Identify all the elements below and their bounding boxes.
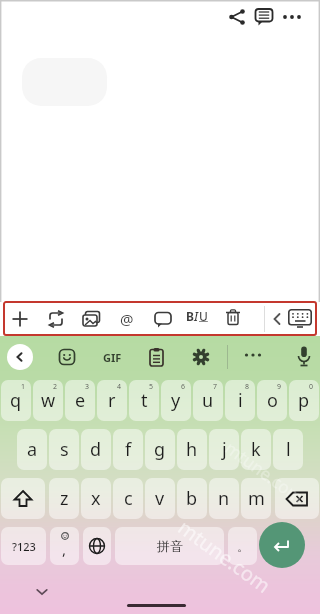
button[interactable]: t — [129, 380, 159, 421]
button[interactable]: o — [257, 380, 287, 421]
staticText: 9 — [277, 382, 282, 392]
button[interactable] — [288, 309, 312, 328]
button[interactable] — [254, 7, 274, 27]
button[interactable] — [47, 310, 65, 328]
button[interactable]: j — [209, 429, 239, 470]
button[interactable] — [82, 310, 101, 329]
button[interactable]: a — [17, 429, 47, 470]
staticText: 8 — [245, 382, 250, 392]
staticText: p — [298, 388, 310, 413]
button[interactable]: w — [33, 380, 63, 421]
staticText: c — [124, 486, 133, 511]
button[interactable]: l — [273, 429, 303, 470]
button[interactable]: b — [177, 478, 207, 519]
staticText: m — [248, 486, 265, 511]
button[interactable]: c — [113, 478, 143, 519]
staticText: e — [75, 388, 86, 413]
staticText: , — [62, 539, 67, 559]
staticText: 1 — [21, 382, 26, 392]
staticText: k — [251, 437, 261, 462]
staticText: g — [154, 437, 166, 462]
staticText: @ — [120, 309, 134, 329]
staticText: w — [41, 388, 56, 413]
button[interactable]: f — [113, 429, 143, 470]
button[interactable] — [273, 313, 281, 325]
button[interactable] — [228, 8, 246, 26]
button[interactable]: d — [81, 429, 111, 470]
button[interactable]: u — [193, 380, 223, 421]
button[interactable]: 。 — [228, 527, 257, 565]
staticText: o — [267, 388, 278, 413]
button[interactable]: x — [81, 478, 111, 519]
staticText: I — [194, 308, 199, 324]
staticText: 0 — [309, 382, 314, 392]
staticText: a — [27, 437, 38, 462]
staticText: i — [238, 388, 243, 413]
button[interactable]: ?123 — [1, 527, 46, 565]
button[interactable]: z — [49, 478, 79, 519]
button[interactable]: y — [161, 380, 191, 421]
button[interactable]: , — [50, 527, 79, 565]
button[interactable] — [83, 527, 111, 565]
staticText: B — [186, 308, 194, 324]
staticText: s — [60, 437, 69, 462]
staticText: h — [186, 437, 198, 462]
staticText: r — [108, 388, 116, 413]
staticText: y — [171, 388, 181, 413]
button[interactable]: n — [209, 478, 239, 519]
button[interactable]: e — [65, 380, 95, 421]
button[interactable] — [58, 348, 76, 366]
staticText: u — [202, 388, 214, 413]
staticText: b — [186, 486, 198, 511]
staticText: 拼音 — [157, 538, 183, 554]
staticText: z — [60, 486, 69, 511]
button[interactable] — [225, 309, 241, 325]
button[interactable] — [12, 311, 28, 327]
staticText: 7 — [213, 382, 218, 392]
button[interactable] — [282, 8, 302, 28]
button[interactable] — [275, 478, 319, 519]
button[interactable]: h — [177, 429, 207, 470]
button[interactable]: r — [97, 380, 127, 421]
button[interactable]: 拼音 — [115, 527, 224, 565]
button[interactable] — [36, 588, 48, 596]
button[interactable]: @ — [118, 308, 136, 330]
staticText: q — [10, 388, 22, 413]
button[interactable]: B — [186, 308, 208, 330]
button[interactable]: m — [241, 478, 271, 519]
button[interactable] — [7, 344, 33, 370]
button[interactable]: p — [289, 380, 319, 421]
button[interactable]: g — [145, 429, 175, 470]
button[interactable] — [243, 350, 263, 370]
staticText: U — [199, 308, 208, 324]
button[interactable]: q — [1, 380, 31, 421]
staticText: 2 — [53, 382, 58, 392]
staticText: d — [90, 437, 102, 462]
button[interactable] — [149, 347, 164, 367]
staticText: n — [218, 486, 230, 511]
button[interactable] — [1, 478, 45, 519]
button[interactable] — [259, 522, 305, 568]
staticText: 5 — [149, 382, 154, 392]
staticText: 3 — [85, 382, 90, 392]
button[interactable] — [154, 311, 172, 329]
button[interactable]: i — [225, 380, 255, 421]
button[interactable]: s — [49, 429, 79, 470]
button[interactable]: v — [145, 478, 175, 519]
staticText: f — [125, 437, 132, 462]
staticText: 6 — [181, 382, 186, 392]
button[interactable]: GIF — [98, 345, 126, 369]
staticText: mtune.com — [221, 436, 309, 509]
staticText: 。 — [237, 539, 249, 554]
staticText: 4 — [117, 382, 122, 392]
staticText: mtune.com — [173, 514, 276, 599]
staticText: x — [91, 486, 101, 511]
button[interactable] — [297, 346, 311, 368]
staticText: l — [286, 437, 291, 462]
staticText: t — [141, 388, 148, 413]
button[interactable]: k — [241, 429, 271, 470]
staticText: j — [222, 437, 227, 462]
staticText: v — [155, 486, 165, 511]
staticText: ?123 — [12, 539, 36, 554]
button[interactable] — [192, 348, 210, 366]
